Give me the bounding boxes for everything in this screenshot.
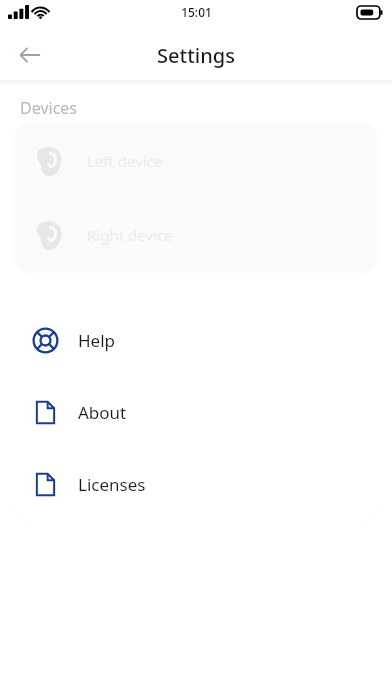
button[interactable]: Licenses: [15, 448, 377, 520]
staticText: Help: [78, 329, 116, 352]
staticText: Left device: [87, 151, 163, 171]
staticText: Right device: [87, 225, 173, 245]
staticText: 15:01: [181, 4, 212, 20]
button[interactable]: About: [15, 376, 377, 448]
staticText: About: [78, 401, 127, 424]
staticText: Devices: [20, 97, 78, 119]
button[interactable]: Back: [6, 31, 54, 79]
button[interactable]: Help: [15, 304, 377, 376]
staticText: Licenses: [78, 473, 146, 496]
button[interactable]: Right device: [15, 205, 377, 265]
staticText: Settings: [157, 42, 235, 69]
